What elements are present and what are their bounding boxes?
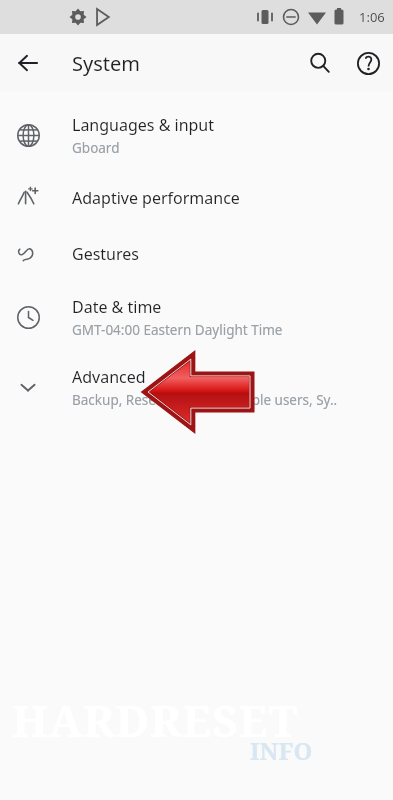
staticText: Gestures bbox=[72, 243, 139, 265]
staticText: INFO bbox=[250, 734, 313, 767]
staticText: Date & time bbox=[72, 296, 162, 318]
button[interactable]: Back bbox=[6, 41, 50, 85]
button[interactable]: Search bbox=[298, 41, 342, 85]
button[interactable]: Gestures bbox=[0, 226, 393, 282]
staticText: System bbox=[72, 50, 140, 77]
button[interactable]: Languages & input bbox=[0, 100, 393, 170]
staticText: Adaptive performance bbox=[72, 187, 240, 209]
button[interactable]: Help bbox=[346, 41, 390, 85]
staticText: HARDRESET bbox=[12, 690, 299, 750]
staticText: Languages & input bbox=[72, 114, 215, 136]
button[interactable]: Adaptive performance bbox=[0, 170, 393, 226]
staticText: Backup, Reset options, Multiple users, S… bbox=[72, 391, 338, 409]
staticText: Advanced bbox=[72, 366, 146, 388]
staticText: Gboard bbox=[72, 139, 120, 157]
button[interactable]: Date & time bbox=[0, 282, 393, 352]
staticText: 1:06 bbox=[359, 8, 385, 26]
staticText: GMT-04:00 Eastern Daylight Time bbox=[72, 321, 283, 339]
button[interactable]: Advanced bbox=[0, 352, 393, 422]
